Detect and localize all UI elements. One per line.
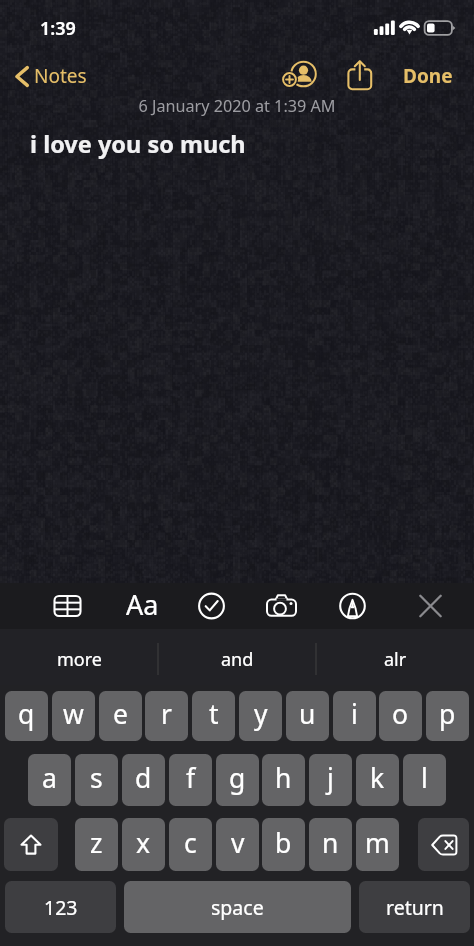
button[interactable]: t	[192, 691, 235, 741]
staticText: c	[184, 825, 197, 861]
staticText: more	[57, 647, 102, 672]
button[interactable]: 123	[5, 881, 116, 933]
staticText: b	[275, 825, 292, 861]
button[interactable]: Table	[48, 587, 86, 625]
button[interactable]: r	[145, 691, 188, 741]
button[interactable]: u	[286, 691, 329, 741]
button[interactable]: o	[379, 691, 422, 741]
staticText: q	[18, 696, 35, 732]
staticText: g	[229, 760, 246, 796]
button[interactable]: space	[124, 881, 351, 933]
button[interactable]: i	[333, 691, 376, 741]
staticText: y	[254, 696, 268, 732]
staticText: 123	[44, 894, 78, 921]
button[interactable]: b	[262, 818, 305, 871]
staticText: r	[161, 696, 172, 732]
staticText: p	[439, 696, 456, 732]
button[interactable]: more	[0, 629, 158, 686]
button[interactable]: Done	[393, 60, 463, 96]
button[interactable]: Aa	[121, 587, 159, 625]
staticText: a	[42, 760, 57, 796]
staticText: t	[209, 696, 219, 732]
button[interactable]: v	[216, 818, 259, 871]
staticText: z	[90, 825, 103, 861]
button[interactable]: q	[5, 691, 48, 741]
staticText: i	[351, 696, 358, 732]
staticText: e	[113, 696, 128, 732]
button[interactable]: f	[169, 754, 212, 806]
staticText: return	[386, 894, 444, 921]
button[interactable]: y	[239, 691, 282, 741]
button[interactable]: Shift	[4, 818, 58, 871]
button[interactable]: l	[403, 754, 446, 806]
button[interactable]: m	[356, 818, 399, 871]
staticText: j	[327, 760, 334, 796]
button[interactable]: j	[309, 754, 352, 806]
staticText: 6 January 2020 at 1:39 AM	[0, 95, 474, 117]
staticText: x	[136, 825, 151, 861]
staticText: w	[63, 696, 84, 732]
button[interactable]: e	[99, 691, 142, 741]
button[interactable]: s	[75, 754, 118, 806]
staticText: s	[90, 760, 103, 796]
button[interactable]: w	[52, 691, 95, 741]
staticText: 1:39	[40, 16, 76, 41]
button[interactable]: Notes	[8, 60, 97, 92]
button[interactable]: a	[28, 754, 71, 806]
button[interactable]: Add people	[274, 55, 320, 95]
button[interactable]: Camera	[262, 587, 300, 625]
staticText: alr	[384, 647, 407, 672]
staticText: o	[392, 696, 409, 732]
staticText: l	[421, 760, 428, 796]
staticText: Aa	[126, 586, 159, 623]
button[interactable]: Markup	[333, 587, 371, 625]
button[interactable]: h	[262, 754, 305, 806]
staticText: u	[299, 696, 316, 732]
staticText: Notes	[34, 63, 87, 89]
button[interactable]: p	[426, 691, 469, 741]
button[interactable]: Share	[338, 55, 382, 95]
staticText: v	[231, 825, 245, 861]
button[interactable]: n	[309, 818, 352, 871]
staticText: n	[322, 825, 339, 861]
button[interactable]: k	[356, 754, 399, 806]
button[interactable]: Checklist	[192, 587, 230, 625]
button[interactable]: g	[216, 754, 259, 806]
staticText: m	[365, 825, 390, 861]
staticText: i love you so much	[30, 128, 246, 160]
button[interactable]: c	[169, 818, 212, 871]
button[interactable]: and	[158, 629, 316, 686]
staticText: k	[370, 760, 385, 796]
staticText: Done	[403, 63, 453, 89]
staticText: h	[275, 760, 292, 796]
staticText: f	[186, 760, 196, 796]
button[interactable]: alr	[316, 629, 474, 686]
button[interactable]: Close	[411, 587, 449, 625]
staticText: d	[135, 760, 152, 796]
button[interactable]: d	[122, 754, 165, 806]
button[interactable]: z	[75, 818, 118, 871]
staticText: and	[221, 647, 254, 672]
staticText: space	[211, 894, 264, 921]
button[interactable]: return	[359, 881, 470, 933]
button[interactable]: Backspace	[418, 818, 469, 871]
button[interactable]: x	[122, 818, 165, 871]
